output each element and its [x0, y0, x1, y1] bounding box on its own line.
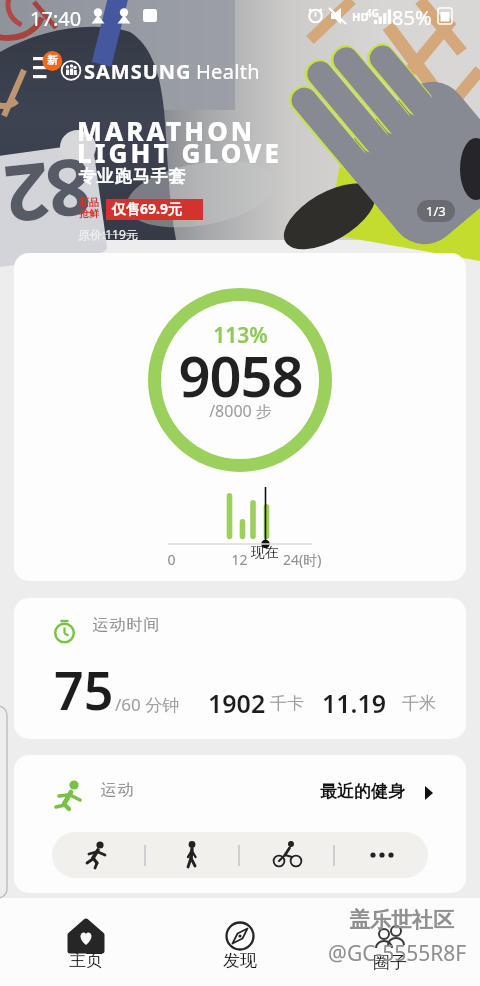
staticText: Health: [196, 58, 260, 85]
staticText: 主页: [69, 950, 103, 971]
button[interactable]: [240, 832, 333, 878]
staticText: 专业跑马手套: [78, 166, 186, 187]
staticText: 现在: [251, 544, 279, 562]
staticText: 82: [3, 146, 97, 249]
staticText: 发现: [223, 950, 257, 971]
staticText: /8000 步: [209, 400, 272, 422]
staticText: 85%: [392, 4, 432, 31]
staticText: 仅售69.9元: [112, 199, 182, 218]
button[interactable]: 发现: [200, 904, 280, 982]
staticText: 运动: [100, 780, 134, 800]
button[interactable]: [335, 832, 428, 878]
staticText: 运动时间: [92, 615, 160, 635]
staticText: 0: [167, 550, 176, 569]
staticText: 最近的健身: [320, 781, 405, 802]
staticText: 9058: [178, 337, 303, 413]
staticText: 盖乐世社区: [349, 907, 454, 933]
staticText: 17:40: [30, 5, 82, 32]
button[interactable]: 运动时间: [14, 598, 466, 739]
button[interactable]: 圈子: [350, 904, 430, 982]
staticText: 24(时): [283, 550, 322, 569]
staticText: 新: [47, 53, 58, 67]
staticText: 千卡: [270, 693, 304, 714]
staticText: /60 分钟: [115, 693, 180, 716]
staticText: SAMSUNG: [84, 58, 192, 85]
staticText: 原价:119元: [78, 226, 138, 242]
button[interactable]: 运动: [14, 755, 466, 893]
staticText: 1/3: [426, 202, 446, 220]
button[interactable]: [146, 832, 238, 878]
staticText: 4G: [366, 6, 379, 20]
button[interactable]: 82: [0, 0, 480, 240]
staticText: 75: [54, 654, 114, 725]
staticText: 抢鲜: [79, 207, 99, 220]
staticText: MARATHON: [77, 113, 256, 148]
staticText: @GC-5555R8F: [328, 939, 467, 968]
staticText: 千米: [402, 693, 436, 714]
staticText: 1902: [208, 686, 266, 720]
staticText: 11.19: [322, 686, 387, 720]
staticText: 12: [231, 550, 248, 569]
staticText: 圈子: [373, 952, 407, 973]
staticText: 113%: [213, 321, 268, 350]
button[interactable]: 113%: [14, 253, 466, 581]
staticText: LIGHT GLOVE: [77, 135, 282, 170]
staticText: HD: [352, 9, 369, 24]
button[interactable]: 主页: [46, 904, 126, 982]
staticText: 新品: [79, 196, 99, 209]
button[interactable]: [52, 832, 144, 878]
